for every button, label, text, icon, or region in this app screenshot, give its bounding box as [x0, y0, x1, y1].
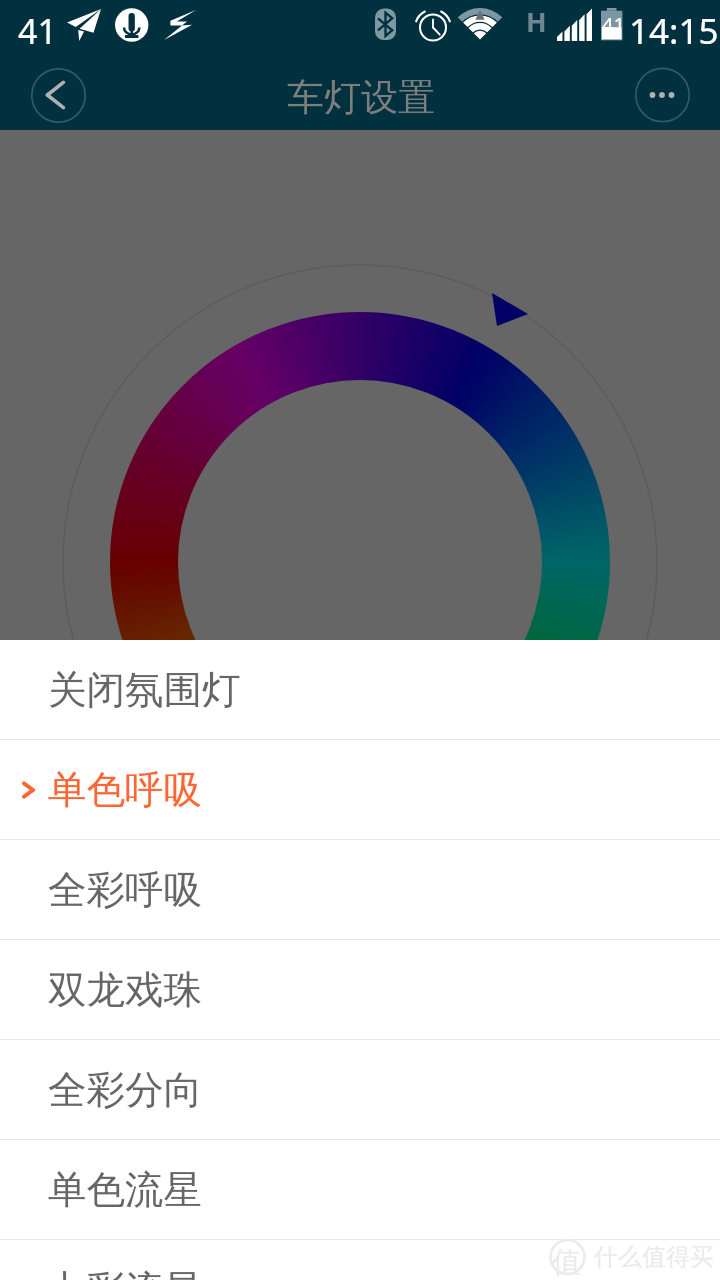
button[interactable]: Back: [31, 68, 86, 123]
staticText: 什么值得买: [594, 1242, 714, 1272]
staticText: 双龙戏珠: [48, 966, 202, 1015]
button[interactable]: 双龙戏珠: [0, 940, 720, 1040]
staticText: 值: [552, 1244, 581, 1280]
staticText: 全彩呼吸: [48, 866, 202, 915]
staticText: 单色流星: [48, 1166, 202, 1215]
staticText: 41: [18, 8, 57, 54]
staticText: 车灯设置: [287, 74, 435, 121]
button[interactable]: More options: [635, 67, 690, 122]
staticText: 41: [602, 11, 625, 38]
staticText: 14:15: [629, 7, 719, 55]
button[interactable]: 全彩呼吸: [0, 840, 720, 940]
staticText: 单色呼吸: [48, 766, 202, 815]
staticText: 七彩流星: [48, 1266, 202, 1280]
staticText: 全彩分向: [48, 1066, 202, 1115]
button[interactable]: 单色呼吸: [0, 740, 720, 840]
button[interactable]: 单色流星: [0, 1140, 720, 1240]
button[interactable]: 全彩分向: [0, 1040, 720, 1140]
button[interactable]: 关闭氛围灯: [0, 640, 720, 740]
staticText: 关闭氛围灯: [48, 666, 241, 715]
staticText: H: [526, 3, 547, 40]
button[interactable]: 七彩流星: [0, 1240, 720, 1280]
